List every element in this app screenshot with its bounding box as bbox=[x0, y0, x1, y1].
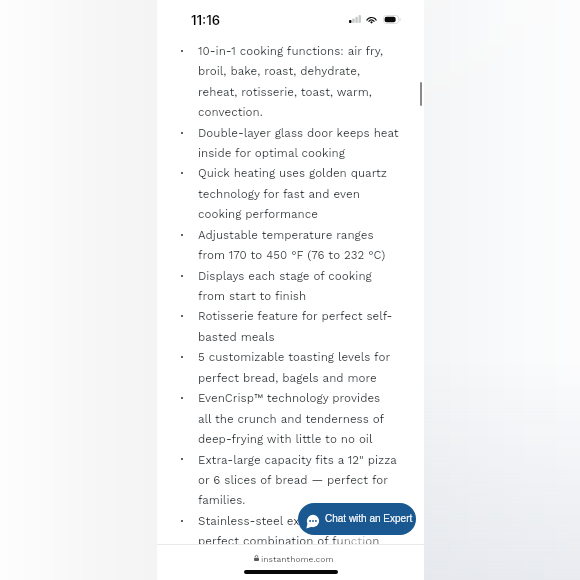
staticText: or 6 slices of bread — perfect for bbox=[198, 473, 388, 487]
staticText: all the crunch and tenderness of bbox=[198, 412, 385, 426]
staticText: Stainless-steel ext bbox=[198, 514, 305, 528]
staticText: deep-frying with little to no oil bbox=[198, 432, 373, 446]
staticText: EvenCrisp™ technology provides bbox=[198, 391, 381, 405]
staticText: broil, bake, roast, dehydrate, bbox=[198, 64, 360, 78]
staticText: instanthome.com bbox=[261, 554, 334, 564]
staticText: perfect bread, bagels and more bbox=[198, 371, 377, 385]
button[interactable]: Chat with an Expert bbox=[298, 503, 416, 535]
staticText: cooking performance bbox=[198, 207, 318, 221]
staticText: Rotisserie feature for perfect self- bbox=[198, 309, 393, 323]
staticText: families. bbox=[198, 493, 246, 507]
staticText: 10-in-1 cooking functions: air fry, bbox=[198, 44, 383, 58]
staticText: convection. bbox=[198, 105, 263, 119]
staticText: Extra-large capacity fits a 12" pizza bbox=[198, 453, 397, 467]
staticText: Double-layer glass door keeps heat bbox=[198, 126, 399, 140]
staticText: perfect combination of function bbox=[198, 534, 380, 548]
staticText: basted meals bbox=[198, 330, 275, 344]
staticText: from start to finish bbox=[198, 289, 307, 303]
staticText: Displays each stage of cooking bbox=[198, 269, 372, 283]
staticText: Chat with an Expert bbox=[325, 513, 413, 524]
staticText: from 170 to 450 °F (76 to 232 °C) bbox=[198, 248, 386, 262]
staticText: Quick heating uses golden quartz bbox=[198, 166, 388, 180]
staticText: Adjustable temperature ranges bbox=[198, 228, 374, 242]
staticText: technology for fast and even bbox=[198, 187, 360, 201]
staticText: inside for optimal cooking bbox=[198, 146, 345, 160]
staticText: 5 customizable toasting levels for bbox=[198, 350, 391, 364]
staticText: reheat, rotisserie, toast, warm, bbox=[198, 85, 372, 99]
staticText: 11:16 bbox=[191, 12, 220, 28]
